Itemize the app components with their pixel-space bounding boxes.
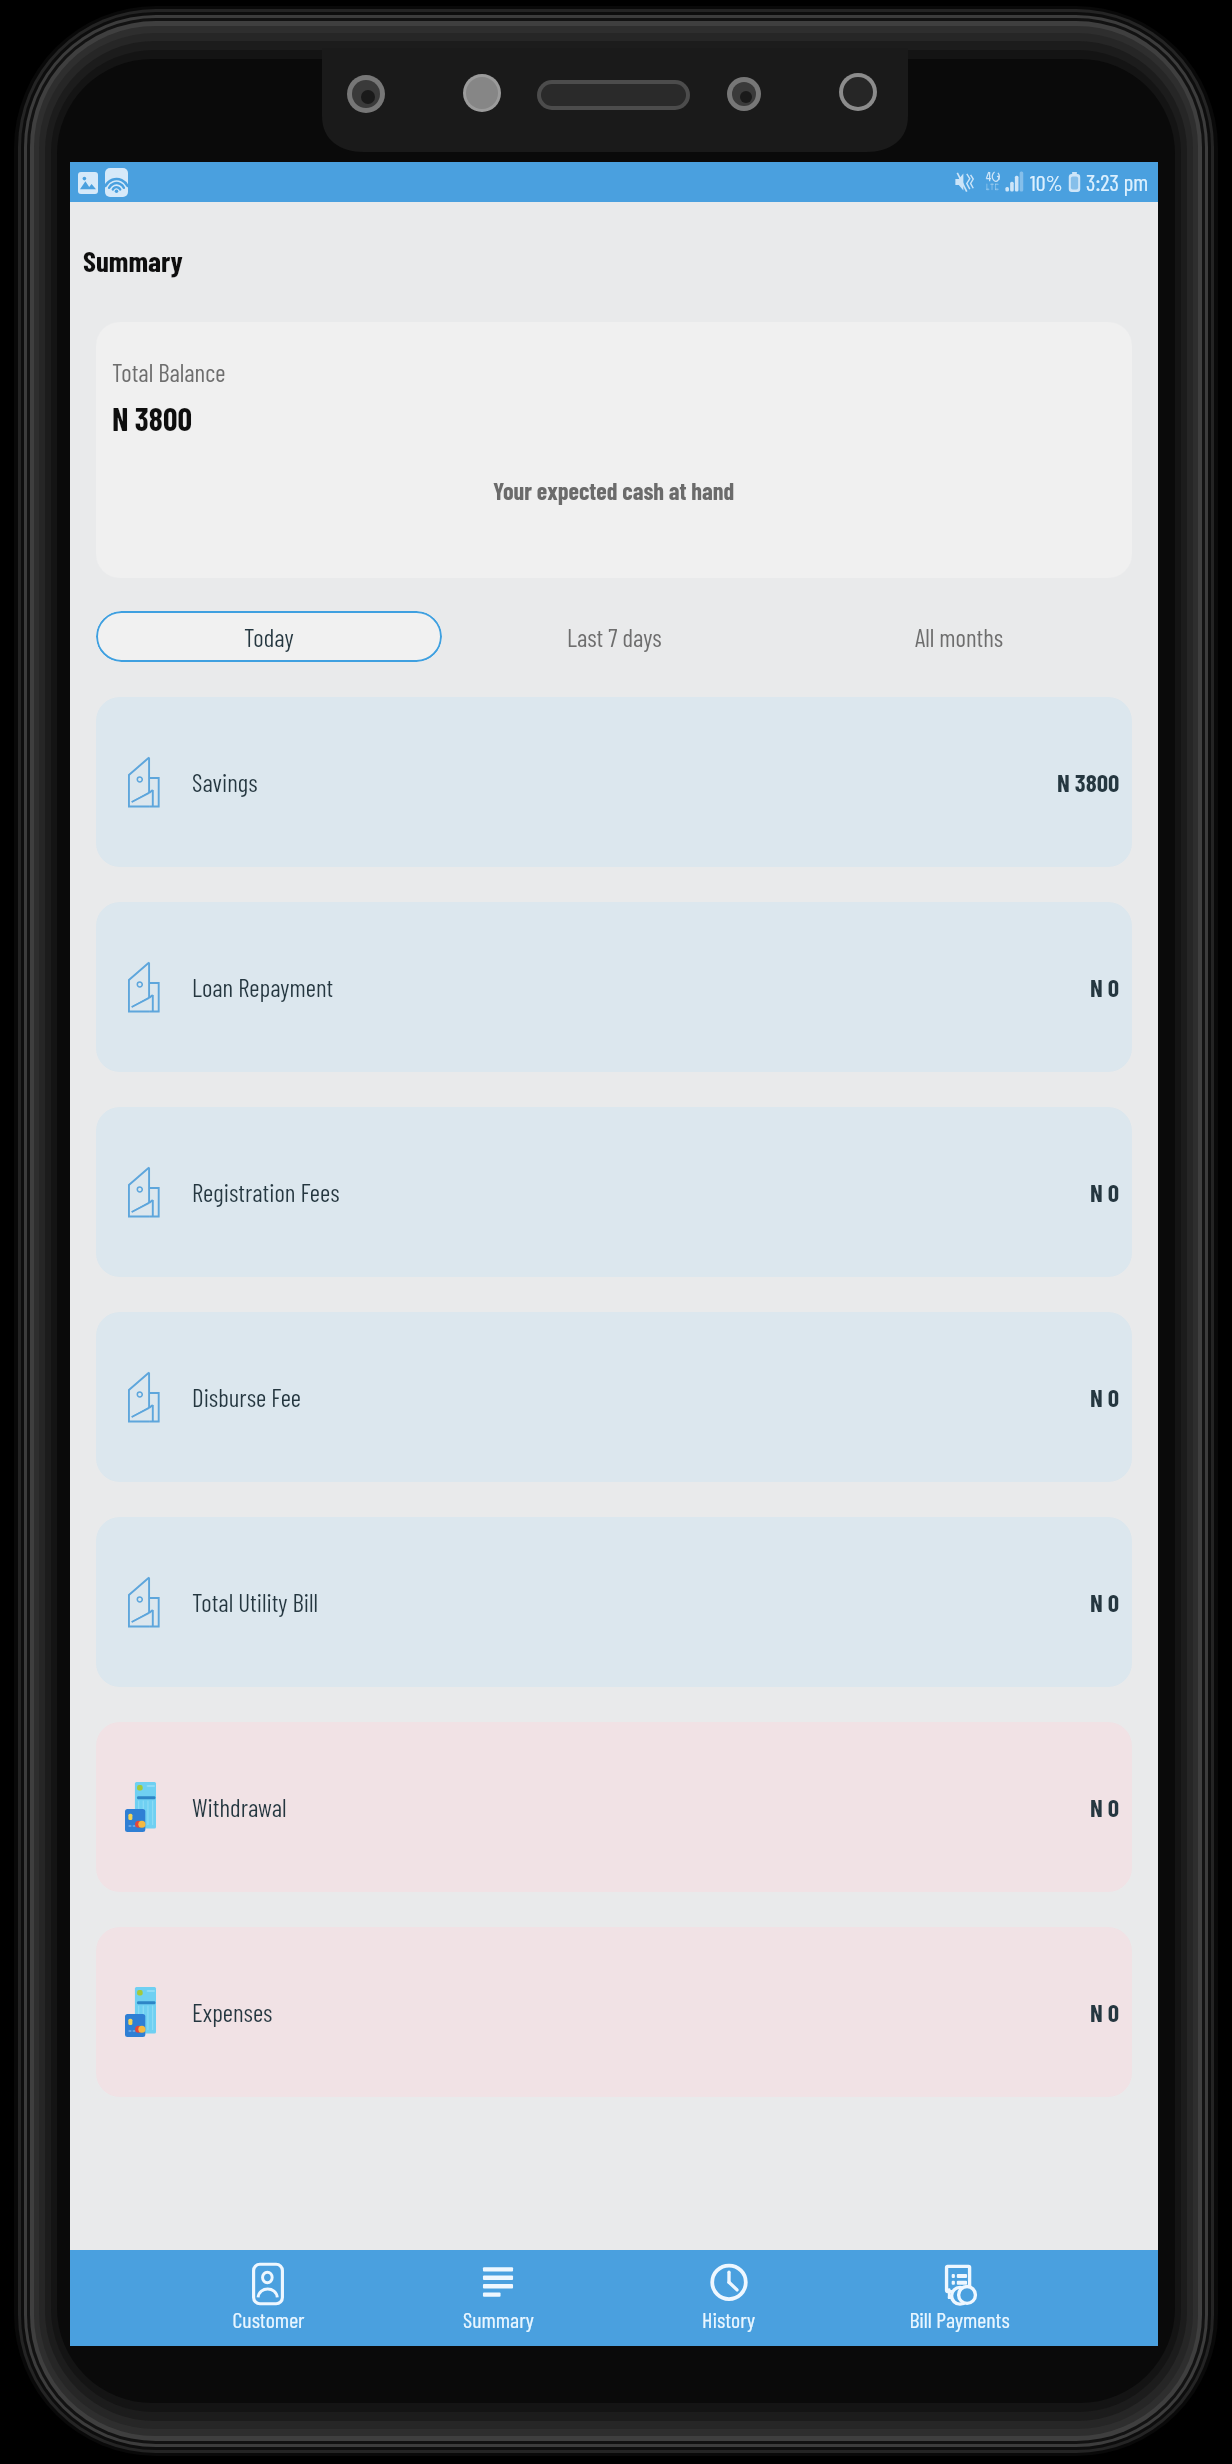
staticText: N 3800 — [112, 399, 192, 437]
staticText: Customer — [232, 2306, 305, 2332]
staticText: N 0 — [1090, 1177, 1120, 1207]
button[interactable]: Total Utility Bill — [96, 1517, 1132, 1687]
button[interactable]: Expenses — [96, 1927, 1132, 2097]
staticText: Your expected cash at hand — [493, 476, 735, 505]
staticText: Last 7 days — [567, 622, 662, 652]
staticText: Registration Fees — [192, 1177, 340, 1207]
staticText: Disburse Fee — [192, 1382, 301, 1412]
staticText: Summary — [463, 2306, 534, 2332]
staticText: Expenses — [192, 1997, 273, 2027]
staticText: History — [702, 2306, 755, 2332]
button[interactable]: Withdrawal — [96, 1722, 1132, 1892]
button[interactable]: Total Balance — [96, 322, 1132, 578]
staticText: N 0 — [1090, 1382, 1120, 1412]
staticText: N 0 — [1090, 1587, 1120, 1617]
button[interactable]: Today — [96, 611, 442, 662]
button[interactable]: All months — [787, 611, 1132, 662]
staticText: Total Utility Bill — [192, 1587, 319, 1617]
button[interactable]: Last 7 days — [442, 611, 787, 662]
staticText: Total Balance — [112, 357, 226, 387]
staticText: Summary — [83, 243, 183, 278]
button[interactable]: Loan Repayment — [96, 902, 1132, 1072]
staticText: 3:23 pm — [1086, 168, 1149, 196]
button[interactable]: History — [613, 2250, 844, 2346]
staticText: N 0 — [1090, 1997, 1120, 2027]
button[interactable]: Bill Payments — [844, 2250, 1075, 2346]
staticText: Today — [244, 622, 294, 652]
button[interactable]: Disburse Fee — [96, 1312, 1132, 1482]
staticText: N 3800 — [1057, 767, 1120, 797]
staticText: All months — [915, 622, 1004, 652]
staticText: N 0 — [1090, 972, 1120, 1002]
button[interactable]: Registration Fees — [96, 1107, 1132, 1277]
staticText: Loan Repayment — [192, 972, 334, 1002]
button[interactable]: Savings — [96, 697, 1132, 867]
button[interactable]: Customer — [153, 2250, 383, 2346]
staticText: Withdrawal — [192, 1792, 287, 1822]
staticText: N 0 — [1090, 1792, 1120, 1822]
staticText: Bill Payments — [909, 2306, 1010, 2332]
staticText: 10% — [1030, 169, 1063, 195]
staticText: Savings — [192, 767, 258, 797]
button[interactable]: Summary — [383, 2250, 613, 2346]
